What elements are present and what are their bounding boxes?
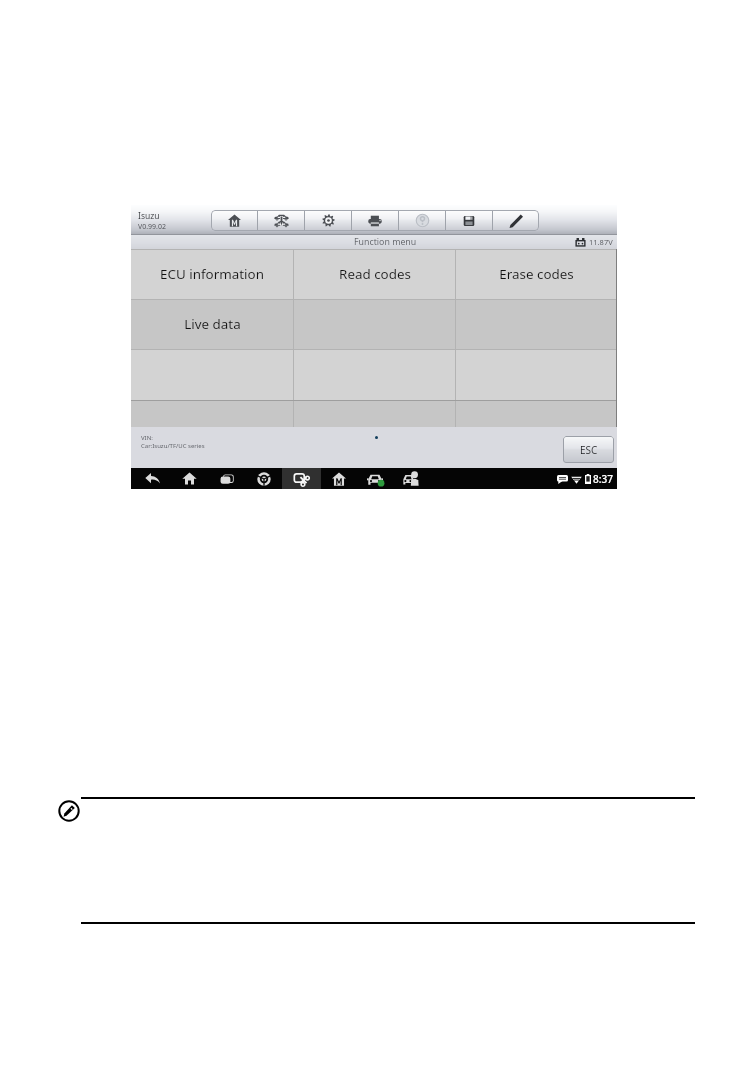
button[interactable]: Vehicle — [357, 468, 393, 489]
button[interactable] — [456, 349, 617, 400]
button[interactable] — [456, 400, 617, 428]
button[interactable] — [456, 299, 617, 349]
button[interactable]: Remote support — [393, 468, 429, 489]
button[interactable]: Help — [399, 210, 445, 231]
button[interactable]: MaxiSys — [321, 468, 357, 489]
button[interactable]: Home — [171, 468, 208, 489]
staticText: 8:37 — [593, 472, 613, 486]
button[interactable]: Live data — [131, 299, 293, 349]
staticText: ECU information — [160, 265, 264, 283]
staticText: VIN: — [141, 434, 153, 442]
staticText: Erase codes — [499, 265, 574, 283]
button[interactable]: Recent apps — [208, 468, 245, 489]
staticText: 11.87V — [589, 237, 613, 247]
button[interactable]: Edit — [493, 210, 539, 231]
button[interactable]: Print — [352, 210, 398, 231]
button[interactable]: Erase codes — [456, 249, 617, 299]
staticText: Live data — [184, 315, 241, 333]
button[interactable]: Back — [134, 468, 171, 489]
button[interactable] — [131, 349, 293, 400]
button[interactable]: Home — [211, 210, 257, 231]
button[interactable] — [294, 349, 455, 400]
button[interactable]: Change vehicle — [258, 210, 304, 231]
button[interactable] — [294, 400, 455, 428]
staticText: ESC — [580, 443, 598, 457]
button[interactable]: ECU information — [131, 249, 293, 299]
button[interactable]: Browser — [245, 468, 282, 489]
button[interactable]: Screenshot — [282, 468, 321, 489]
button[interactable]: Settings — [305, 210, 351, 231]
button[interactable] — [131, 400, 293, 428]
staticText: Car:Isuzu/TF/UC series — [141, 442, 205, 450]
staticText: Read codes — [339, 265, 411, 283]
button[interactable]: Save — [446, 210, 492, 231]
staticText: Function menu — [354, 236, 417, 248]
staticText: V0.99.02 — [138, 222, 166, 232]
staticText: Isuzu — [138, 210, 160, 222]
button[interactable]: ESC — [563, 436, 614, 463]
button[interactable]: Read codes — [294, 249, 455, 299]
